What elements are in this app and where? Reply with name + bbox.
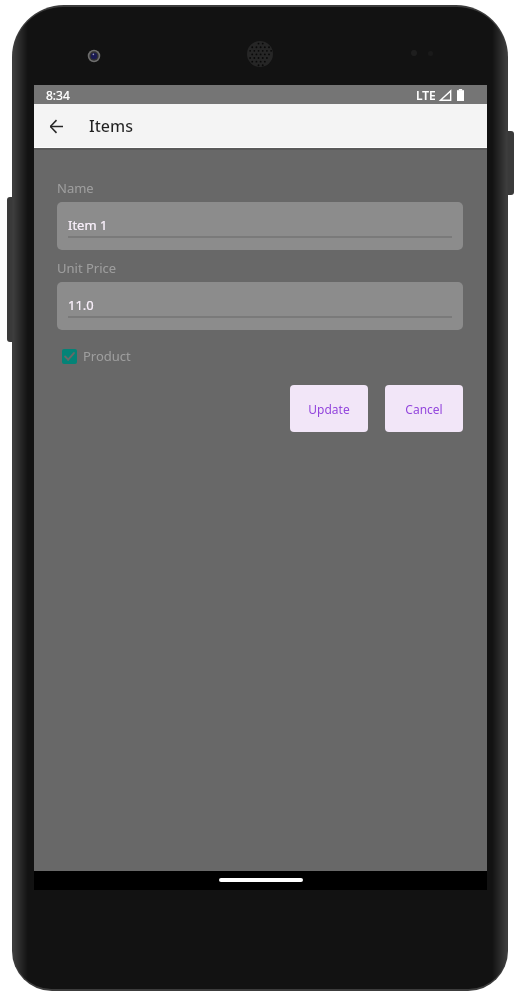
button[interactable]: Cancel	[385, 385, 463, 432]
staticText: Cancel	[405, 401, 443, 417]
staticText: Update	[308, 401, 350, 417]
staticText: Item 1	[68, 216, 108, 234]
button[interactable]: Product	[57, 347, 131, 365]
staticText: Unit Price	[57, 259, 117, 277]
button[interactable]: Item 1	[57, 202, 463, 250]
staticText: LTE	[416, 87, 436, 103]
button[interactable]: 11.0	[57, 282, 463, 330]
staticText: 11.0	[68, 296, 94, 314]
staticText: Name	[57, 179, 94, 197]
button[interactable]: Update	[290, 385, 368, 432]
button[interactable]: Navigate back	[38, 108, 74, 144]
staticText: Items	[89, 115, 133, 137]
staticText: Product	[83, 347, 131, 365]
staticText: 8:34	[46, 87, 70, 103]
